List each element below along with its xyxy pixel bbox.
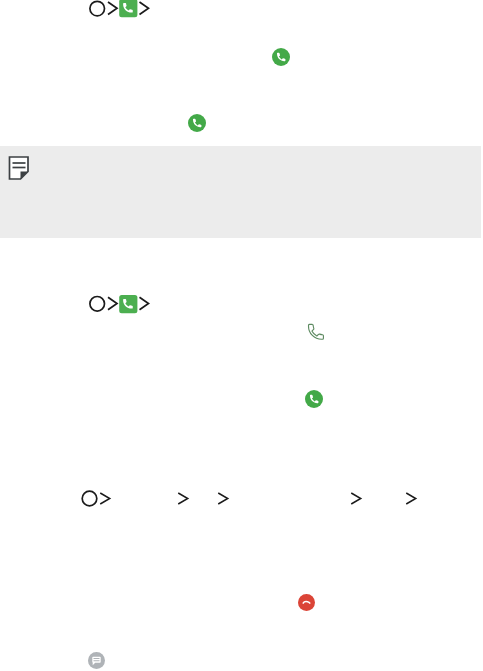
button[interactable]: Call (305, 390, 323, 408)
button[interactable]: Call (188, 114, 206, 132)
button[interactable]: Phone app settings path (80, 489, 420, 509)
button[interactable]: Messages (88, 652, 105, 669)
button[interactable]: Call options (305, 321, 325, 341)
button[interactable]: Open the Phone app (88, 294, 150, 314)
button[interactable]: Open the Phone app (88, 0, 150, 18)
button[interactable]: End call (298, 594, 315, 611)
button[interactable]: Call (272, 48, 290, 66)
